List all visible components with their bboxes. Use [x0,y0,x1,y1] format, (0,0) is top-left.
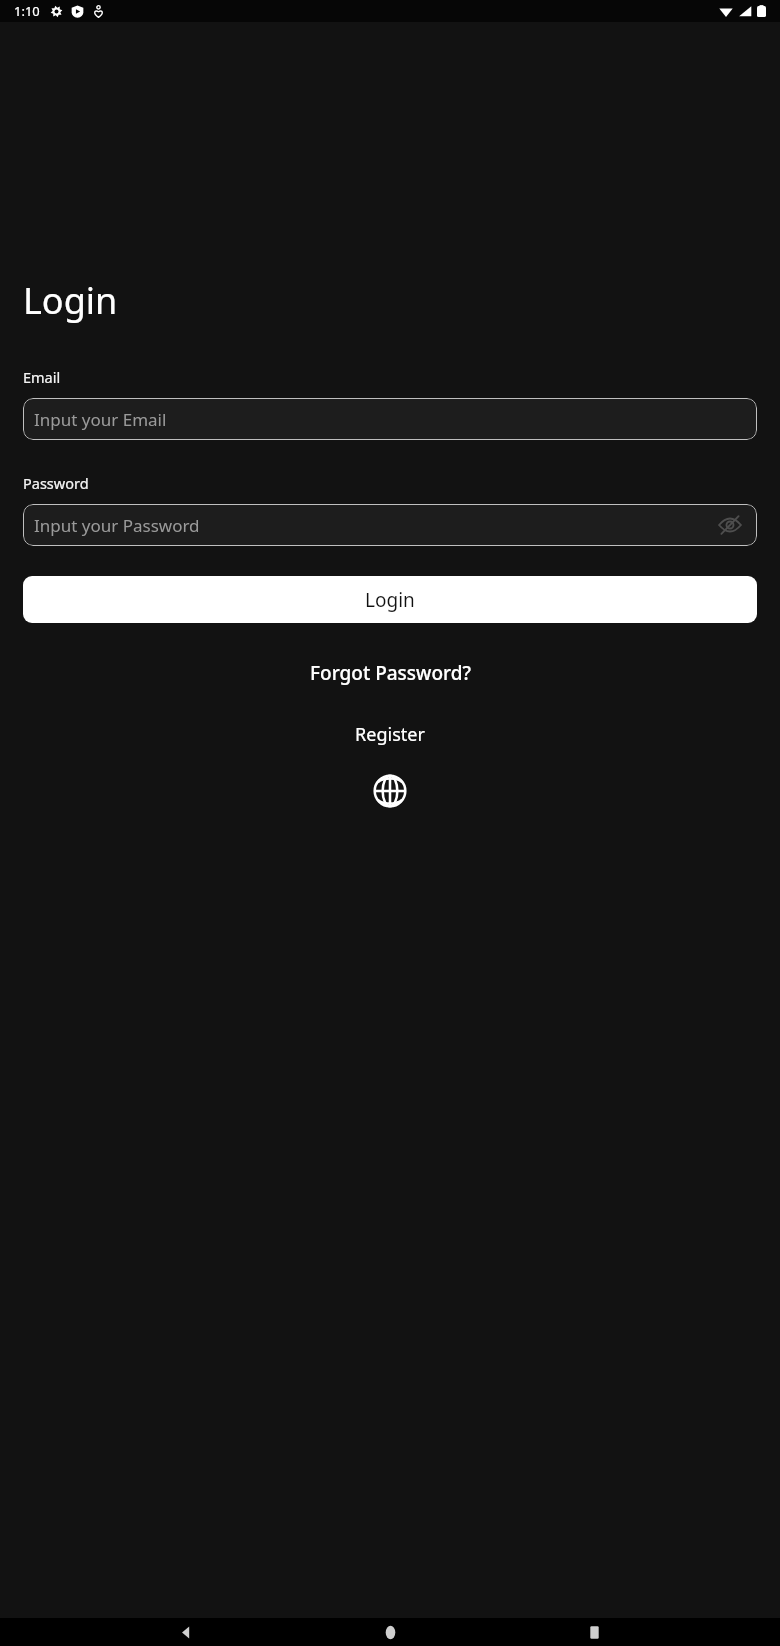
button[interactable]: Recent apps [576,1618,612,1646]
button[interactable]: Input your Password [23,504,757,546]
button[interactable]: Login [23,576,757,623]
button[interactable]: Register [0,717,780,751]
staticText: Password [23,473,89,493]
button[interactable]: Home [372,1618,408,1646]
staticText: 1:10 [14,2,40,20]
button[interactable]: Forgot Password? [0,654,780,692]
staticText: Register [355,722,425,747]
staticText: Email [23,367,61,387]
button[interactable]: Back [168,1618,204,1646]
staticText: Login [23,276,118,325]
staticText: Input your Email [34,408,167,431]
staticText: Forgot Password? [310,660,471,686]
button[interactable]: Change language [372,773,408,809]
button[interactable]: Show password [715,510,745,540]
button[interactable]: Input your Email [23,398,757,440]
staticText: Login [365,587,415,613]
staticText: Input your Password [34,514,200,537]
